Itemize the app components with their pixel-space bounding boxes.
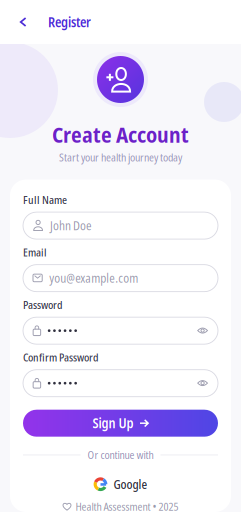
button[interactable]: Sign Up — [23, 410, 218, 437]
staticText: Start your health journey today — [59, 150, 182, 165]
staticText: John Doe — [50, 217, 92, 234]
staticText: you@example.com — [49, 270, 138, 286]
staticText: Create Account — [52, 120, 189, 149]
staticText: Sign Up — [92, 414, 133, 432]
staticText: Health Assessment • 2025 — [75, 499, 178, 512]
staticText: Or continue with — [87, 448, 153, 462]
button[interactable]: Google — [23, 475, 218, 493]
staticText: Password — [23, 298, 63, 312]
button[interactable] — [23, 317, 218, 344]
staticText: Email — [23, 245, 47, 260]
staticText: Full Name — [23, 193, 67, 207]
button[interactable]: Back — [9, 7, 37, 37]
staticText: Confirm Password — [23, 350, 99, 365]
staticText: Register — [48, 13, 91, 31]
staticText: Google — [113, 476, 147, 492]
button[interactable]: you@example.com — [23, 265, 218, 292]
button[interactable]: John Doe — [23, 212, 218, 239]
button[interactable] — [23, 370, 218, 397]
